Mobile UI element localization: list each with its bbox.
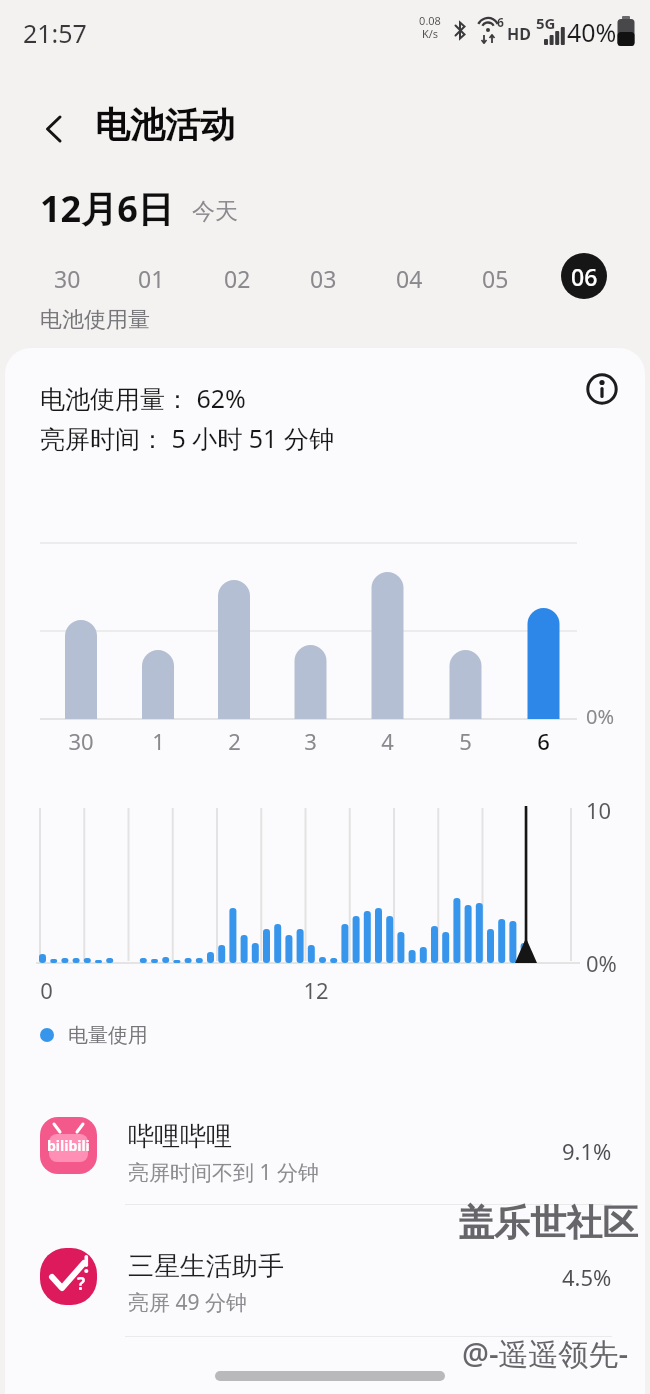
- staticText: 06: [571, 261, 598, 292]
- staticText: bilibili: [47, 1136, 90, 1155]
- staticText: 01: [138, 263, 165, 294]
- staticText: 1: [152, 726, 165, 756]
- staticText: 6: [537, 726, 550, 756]
- staticText: 21:57: [23, 16, 87, 50]
- staticText: 10: [586, 795, 612, 825]
- staticText: 4.5%: [562, 1262, 612, 1292]
- staticText: 03: [310, 263, 337, 294]
- staticText: 3: [304, 726, 317, 756]
- button[interactable]: 05: [465, 258, 525, 298]
- button[interactable]: [585, 372, 619, 406]
- button[interactable]: 04: [379, 258, 439, 298]
- staticText: 亮屏时间： 5 小时 51 分钟: [40, 421, 334, 455]
- staticText: 12: [303, 975, 329, 1005]
- staticText: ?: [77, 1272, 86, 1295]
- staticText: 04: [396, 263, 423, 294]
- staticText: 9.1%: [562, 1136, 612, 1166]
- staticText: 电池使用量： 62%: [40, 381, 246, 415]
- staticText: 02: [224, 263, 251, 294]
- button[interactable]: 02: [207, 258, 267, 298]
- staticText: 30: [68, 726, 94, 756]
- button[interactable]: [44, 115, 64, 143]
- button[interactable]: [20, 1236, 632, 1328]
- staticText: 亮屏 49 分钟: [128, 1288, 247, 1317]
- staticText: @-遥遥领先-: [462, 1333, 629, 1374]
- button[interactable]: [20, 1105, 632, 1197]
- staticText: 30: [54, 263, 81, 294]
- staticText: 电池使用量: [40, 306, 150, 334]
- staticText: 12月6日: [40, 184, 174, 233]
- staticText: 2: [228, 726, 241, 756]
- staticText: 电量使用: [68, 1023, 148, 1048]
- staticText: 40%: [567, 15, 617, 49]
- staticText: 三星生活助手: [128, 1250, 284, 1283]
- staticText: 0: [40, 975, 53, 1005]
- staticText: 0.08 K/s: [419, 13, 441, 41]
- staticText: 6: [497, 14, 504, 30]
- staticText: 今天: [192, 197, 238, 226]
- staticText: 亮屏时间不到 1 分钟: [128, 1158, 319, 1187]
- staticText: 哔哩哔哩: [128, 1120, 232, 1153]
- staticText: HD: [507, 23, 531, 45]
- button[interactable]: 06: [561, 253, 607, 299]
- staticText: 4: [381, 726, 394, 756]
- staticText: 0%: [586, 703, 615, 730]
- staticText: 0%: [586, 948, 617, 978]
- button[interactable]: 01: [121, 258, 181, 298]
- staticText: 05: [482, 263, 509, 294]
- staticText: 盖乐世社区: [458, 1200, 638, 1245]
- button[interactable]: 30: [37, 258, 97, 298]
- button[interactable]: 03: [293, 258, 353, 298]
- staticText: 电池活动: [95, 103, 235, 147]
- staticText: 5: [459, 726, 472, 756]
- staticText: 5G: [536, 13, 556, 33]
